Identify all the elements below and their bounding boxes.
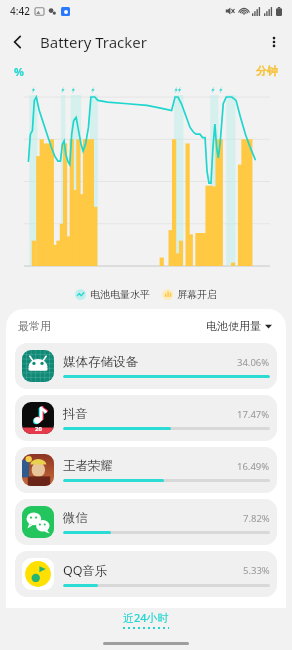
button[interactable]: 近24小时 bbox=[123, 610, 169, 629]
button[interactable]: More options bbox=[256, 24, 292, 60]
staticText: 王者荣耀 bbox=[63, 458, 113, 474]
button[interactable]: 微信 bbox=[15, 499, 277, 545]
staticText: 电池电量水平 bbox=[90, 288, 150, 301]
staticText: 4:42 bbox=[10, 4, 30, 18]
staticText: 抖音 bbox=[63, 406, 88, 422]
staticText: 屏幕开启 bbox=[177, 288, 217, 301]
button[interactable]: Back bbox=[0, 24, 36, 60]
staticText: 电池使用量 bbox=[206, 319, 261, 333]
button[interactable]: 20 bbox=[15, 395, 277, 441]
staticText: % bbox=[14, 64, 24, 79]
staticText: 20 bbox=[35, 425, 42, 433]
staticText: 17.47% bbox=[237, 408, 270, 421]
staticText: 34.06% bbox=[237, 356, 270, 369]
staticText: 分钟 bbox=[256, 64, 278, 78]
button[interactable]: QQ音乐 bbox=[15, 551, 277, 597]
staticText: 近24小时 bbox=[123, 610, 169, 625]
staticText: 微信 bbox=[63, 510, 88, 526]
staticText: 7.82% bbox=[243, 512, 270, 525]
button[interactable]: 媒体存储设备 bbox=[15, 343, 277, 389]
button[interactable]: 王者荣耀 bbox=[15, 447, 277, 493]
staticText: 媒体存储设备 bbox=[63, 354, 138, 370]
staticText: 最常用 bbox=[18, 319, 51, 333]
staticText: 16.49% bbox=[237, 460, 270, 473]
staticText: 5.33% bbox=[243, 564, 270, 577]
button[interactable]: 电池使用量 bbox=[204, 315, 274, 337]
staticText: Battery Tracker bbox=[40, 32, 147, 52]
staticText: QQ音乐 bbox=[63, 562, 108, 579]
